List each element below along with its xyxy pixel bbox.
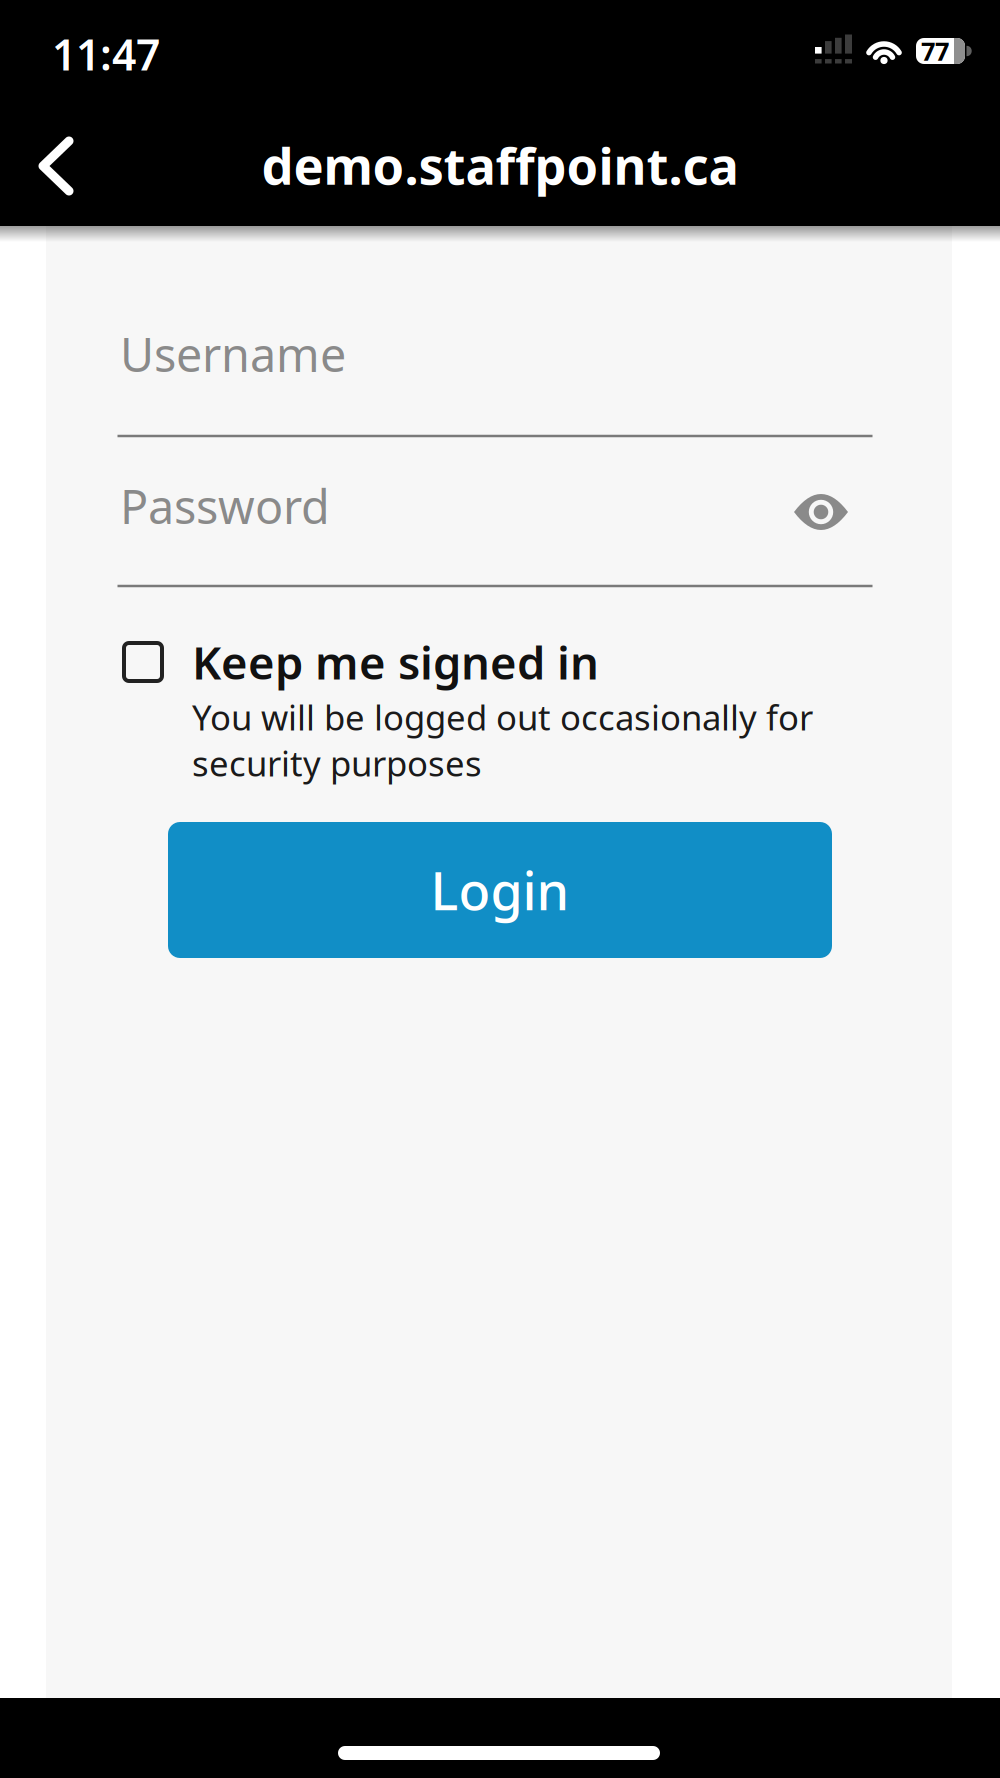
staticText: You will be logged out occasionally for … <box>192 694 813 786</box>
button[interactable]: Password <box>120 475 875 537</box>
staticText: Password <box>120 475 330 537</box>
button[interactable]: Username <box>120 323 875 385</box>
button[interactable]: Keep me signed in <box>124 638 864 686</box>
staticText: demo.staffpoint.ca <box>261 131 738 199</box>
staticText: Username <box>120 323 346 385</box>
staticText: 77 <box>921 34 949 68</box>
staticText: Keep me signed in <box>192 632 599 692</box>
staticText: Login <box>430 855 569 925</box>
button[interactable]: Show password <box>793 493 849 531</box>
button[interactable]: Login <box>168 822 832 958</box>
staticText: 11:47 <box>52 26 160 82</box>
button[interactable]: Back <box>36 136 78 196</box>
